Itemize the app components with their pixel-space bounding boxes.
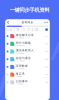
staticText: 48 MB [44, 58, 48, 60]
staticText: 1204 条 · 最近同步 [16, 60, 25, 62]
staticText: 2.4 GB · 最近同步 [16, 37, 24, 39]
button[interactable]: 通讯录联系人 [5, 48, 50, 55]
staticText: 1.8 GB [44, 43, 48, 45]
staticText: 应用数据 [16, 64, 28, 67]
staticText: 资料同步 [21, 21, 33, 24]
staticText: 32 个应用 · 待同步 [16, 68, 24, 70]
staticText: 92 项 · 待同步 [16, 75, 22, 77]
staticText: 2.4 GB [44, 35, 48, 37]
staticText: 已选 5 项 · 共 10.2 GB [7, 28, 39, 31]
staticText: 6 MB [45, 74, 48, 75]
staticText: 通讯录联系人 [16, 49, 34, 52]
staticText: 日历事件 [16, 80, 28, 83]
staticText: 照片与视频 [16, 41, 31, 44]
staticText: 12 MB [44, 51, 48, 52]
button[interactable]: 短信与通话 [5, 55, 50, 63]
staticText: 3 MB [45, 81, 48, 83]
button[interactable]: 备忘录 [5, 71, 50, 78]
button[interactable]: Sync now [45, 28, 48, 31]
staticText: 1.8 GB · 最近同步 [16, 45, 24, 46]
staticText: 4.6 GB [44, 66, 48, 68]
button[interactable]: 照片与视频 [5, 40, 50, 48]
button[interactable]: 日历事件 [5, 78, 50, 86]
staticText: 短信与通话 [16, 56, 31, 60]
staticText: 备忘录 [16, 72, 25, 75]
button[interactable]: 应用数据 [5, 63, 50, 71]
staticText: 微信聊天记录 [16, 33, 34, 37]
button[interactable]: 微信聊天记录 [5, 32, 50, 40]
staticText: 148 项 · 待同步 [16, 83, 23, 85]
button[interactable]: More options [44, 20, 48, 24]
staticText: 386 项 · 最近同步 [16, 52, 24, 54]
button[interactable]: Back [7, 20, 10, 24]
staticText: 一键同步手机资料 [9, 7, 49, 13]
